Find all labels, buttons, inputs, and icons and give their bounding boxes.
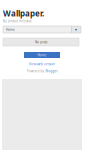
button[interactable]: Home (24, 52, 60, 58)
staticText: Home (6, 27, 15, 32)
staticText: ▾ (75, 27, 77, 32)
staticText: Powered by (26, 69, 44, 73)
button[interactable]: Home (2, 26, 81, 33)
staticText: Wallpaper. (3, 8, 44, 19)
staticText: By Jordan Velestuk (3, 19, 32, 23)
staticText: Blogger (45, 69, 57, 73)
staticText: Home (37, 53, 46, 57)
staticText: No posts (35, 40, 47, 44)
button[interactable]: View web version (29, 62, 55, 66)
staticText: View web version (29, 62, 55, 66)
button[interactable]: Blogger (45, 69, 57, 73)
